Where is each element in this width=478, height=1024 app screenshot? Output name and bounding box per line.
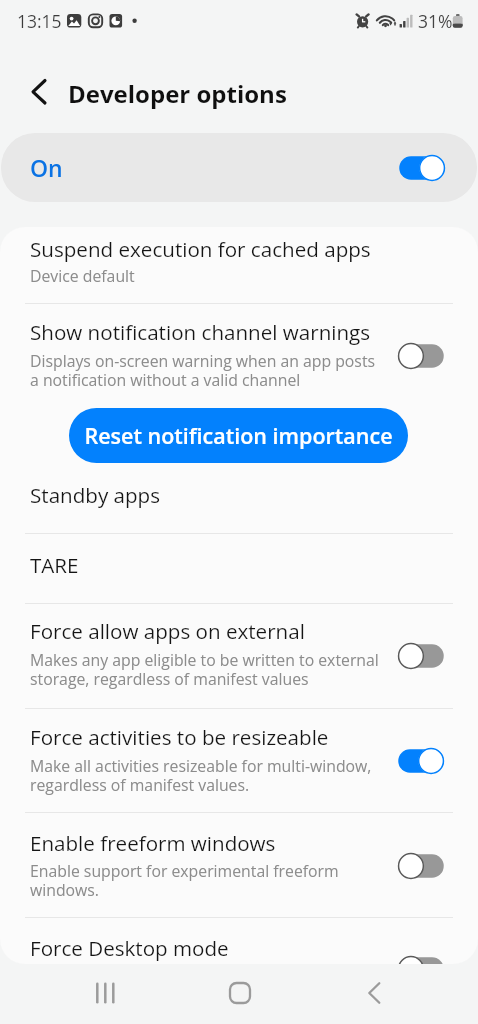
- staticText: On: [30, 152, 63, 183]
- button[interactable]: Force Desktop mode: [0, 918, 478, 964]
- staticText: Show notification channel warnings: [30, 318, 382, 346]
- button[interactable]: Navigate up: [15, 68, 63, 116]
- button[interactable]: Developer options on: [394, 150, 450, 186]
- staticText: Force allow apps on external: [30, 617, 382, 645]
- staticText: Enable support for experimental freeform…: [30, 860, 382, 901]
- button[interactable]: On: [1, 133, 477, 202]
- staticText: Standby apps: [30, 481, 382, 509]
- button[interactable]: Suspend execution for cached apps: [0, 227, 478, 303]
- staticText: 13:15: [17, 9, 62, 33]
- button[interactable]: Force Desktop mode: [393, 951, 449, 964]
- staticText: 31%: [418, 9, 453, 33]
- staticText: Displays on-screen warning when an app p…: [30, 350, 382, 391]
- button[interactable]: Standby apps: [0, 464, 478, 533]
- button[interactable]: Force activities to be resizeable: [0, 709, 478, 812]
- button[interactable]: Enable freeform windows: [393, 848, 449, 884]
- staticText: Force activities to be resizeable: [30, 723, 382, 751]
- button[interactable]: TARE: [0, 534, 478, 604]
- staticText: Device default: [30, 265, 382, 287]
- staticText: Developer options: [68, 77, 287, 110]
- staticText: Make all activities resizeable for multi…: [30, 755, 382, 796]
- staticText: Makes any app eligible to be written to …: [30, 649, 382, 690]
- button[interactable]: Force allow apps on external: [0, 604, 478, 708]
- button[interactable]: Force activities to be resizeable: [393, 743, 449, 779]
- staticText: Enable freeform windows: [30, 829, 382, 857]
- button[interactable]: Home: [200, 969, 280, 1017]
- staticText: Suspend execution for cached apps: [30, 235, 382, 263]
- button[interactable]: Recent apps: [66, 969, 146, 1017]
- button[interactable]: Force allow apps on external: [393, 638, 449, 674]
- staticText: Force Desktop mode: [30, 934, 382, 962]
- staticText: TARE: [30, 551, 382, 579]
- button[interactable]: Enable freeform windows: [0, 813, 478, 918]
- button[interactable]: Show notification channel warnings: [0, 304, 478, 408]
- button[interactable]: Show notification channel warnings: [393, 338, 449, 374]
- staticText: Reset notification importance: [84, 421, 393, 450]
- button[interactable]: Reset notification importance: [69, 408, 408, 463]
- button[interactable]: Back: [334, 969, 414, 1017]
